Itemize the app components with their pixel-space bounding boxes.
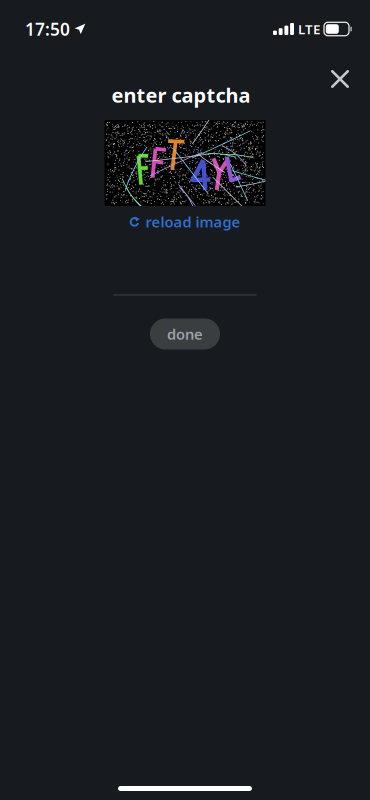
button[interactable]: done bbox=[150, 318, 220, 349]
staticText: enter captcha bbox=[111, 82, 250, 108]
staticText: LTE bbox=[298, 20, 320, 38]
button[interactable]: reload image bbox=[119, 207, 250, 236]
staticText: reload image bbox=[145, 212, 240, 231]
button[interactable]: Close bbox=[318, 57, 362, 101]
staticText: 17:50 bbox=[25, 17, 70, 40]
staticText: done bbox=[167, 324, 203, 344]
